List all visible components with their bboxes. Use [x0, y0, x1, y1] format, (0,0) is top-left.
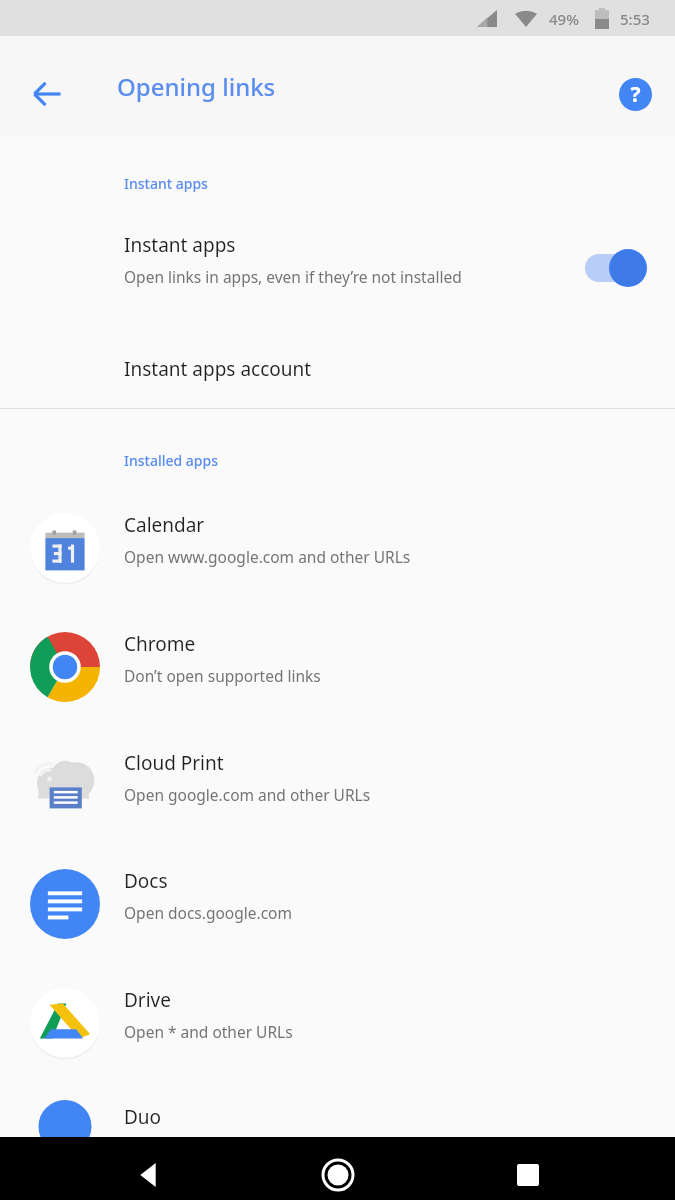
staticText: Cloud Print — [124, 750, 224, 776]
button[interactable]: Help — [607, 66, 663, 122]
staticText: Open docs.google.com — [124, 902, 292, 923]
button[interactable]: Docs — [0, 846, 675, 965]
staticText: 5:53 — [620, 9, 650, 29]
staticText: Chrome — [124, 631, 196, 657]
staticText: 49% — [549, 9, 579, 29]
staticText: ? — [630, 80, 641, 109]
button[interactable]: Cloud Print — [0, 728, 675, 847]
button[interactable]: Calendar — [0, 490, 675, 609]
staticText: Duo — [124, 1104, 162, 1130]
staticText: Instant apps — [124, 174, 208, 193]
button[interactable]: Drive — [0, 965, 675, 1084]
button[interactable]: Instant apps — [0, 212, 675, 324]
staticText: Calendar — [124, 512, 205, 538]
button[interactable]: Instant apps toggle — [585, 248, 647, 288]
staticText: Opening links — [117, 70, 276, 103]
button[interactable]: Duo — [0, 1084, 675, 1137]
button[interactable]: Instant apps account — [0, 330, 675, 402]
staticText: Instant apps account — [124, 356, 312, 382]
staticText: Docs — [124, 868, 168, 894]
staticText: Open google.com and other URLs — [124, 784, 371, 805]
staticText: Drive — [124, 987, 171, 1013]
staticText: Instant apps — [124, 232, 236, 258]
button[interactable]: Recent apps — [498, 1145, 558, 1200]
staticText: Open www.google.com and other URLs — [124, 546, 411, 567]
staticText: Open links in apps, even if they’re not … — [124, 266, 462, 287]
button[interactable]: Back — [19, 66, 75, 122]
button[interactable]: Chrome — [0, 609, 675, 728]
button[interactable]: Back — [118, 1145, 178, 1200]
staticText: Installed apps — [124, 451, 218, 470]
staticText: Don’t open supported links — [124, 665, 321, 686]
staticText: Open * and other URLs — [124, 1021, 293, 1042]
button[interactable]: Home — [308, 1145, 368, 1200]
